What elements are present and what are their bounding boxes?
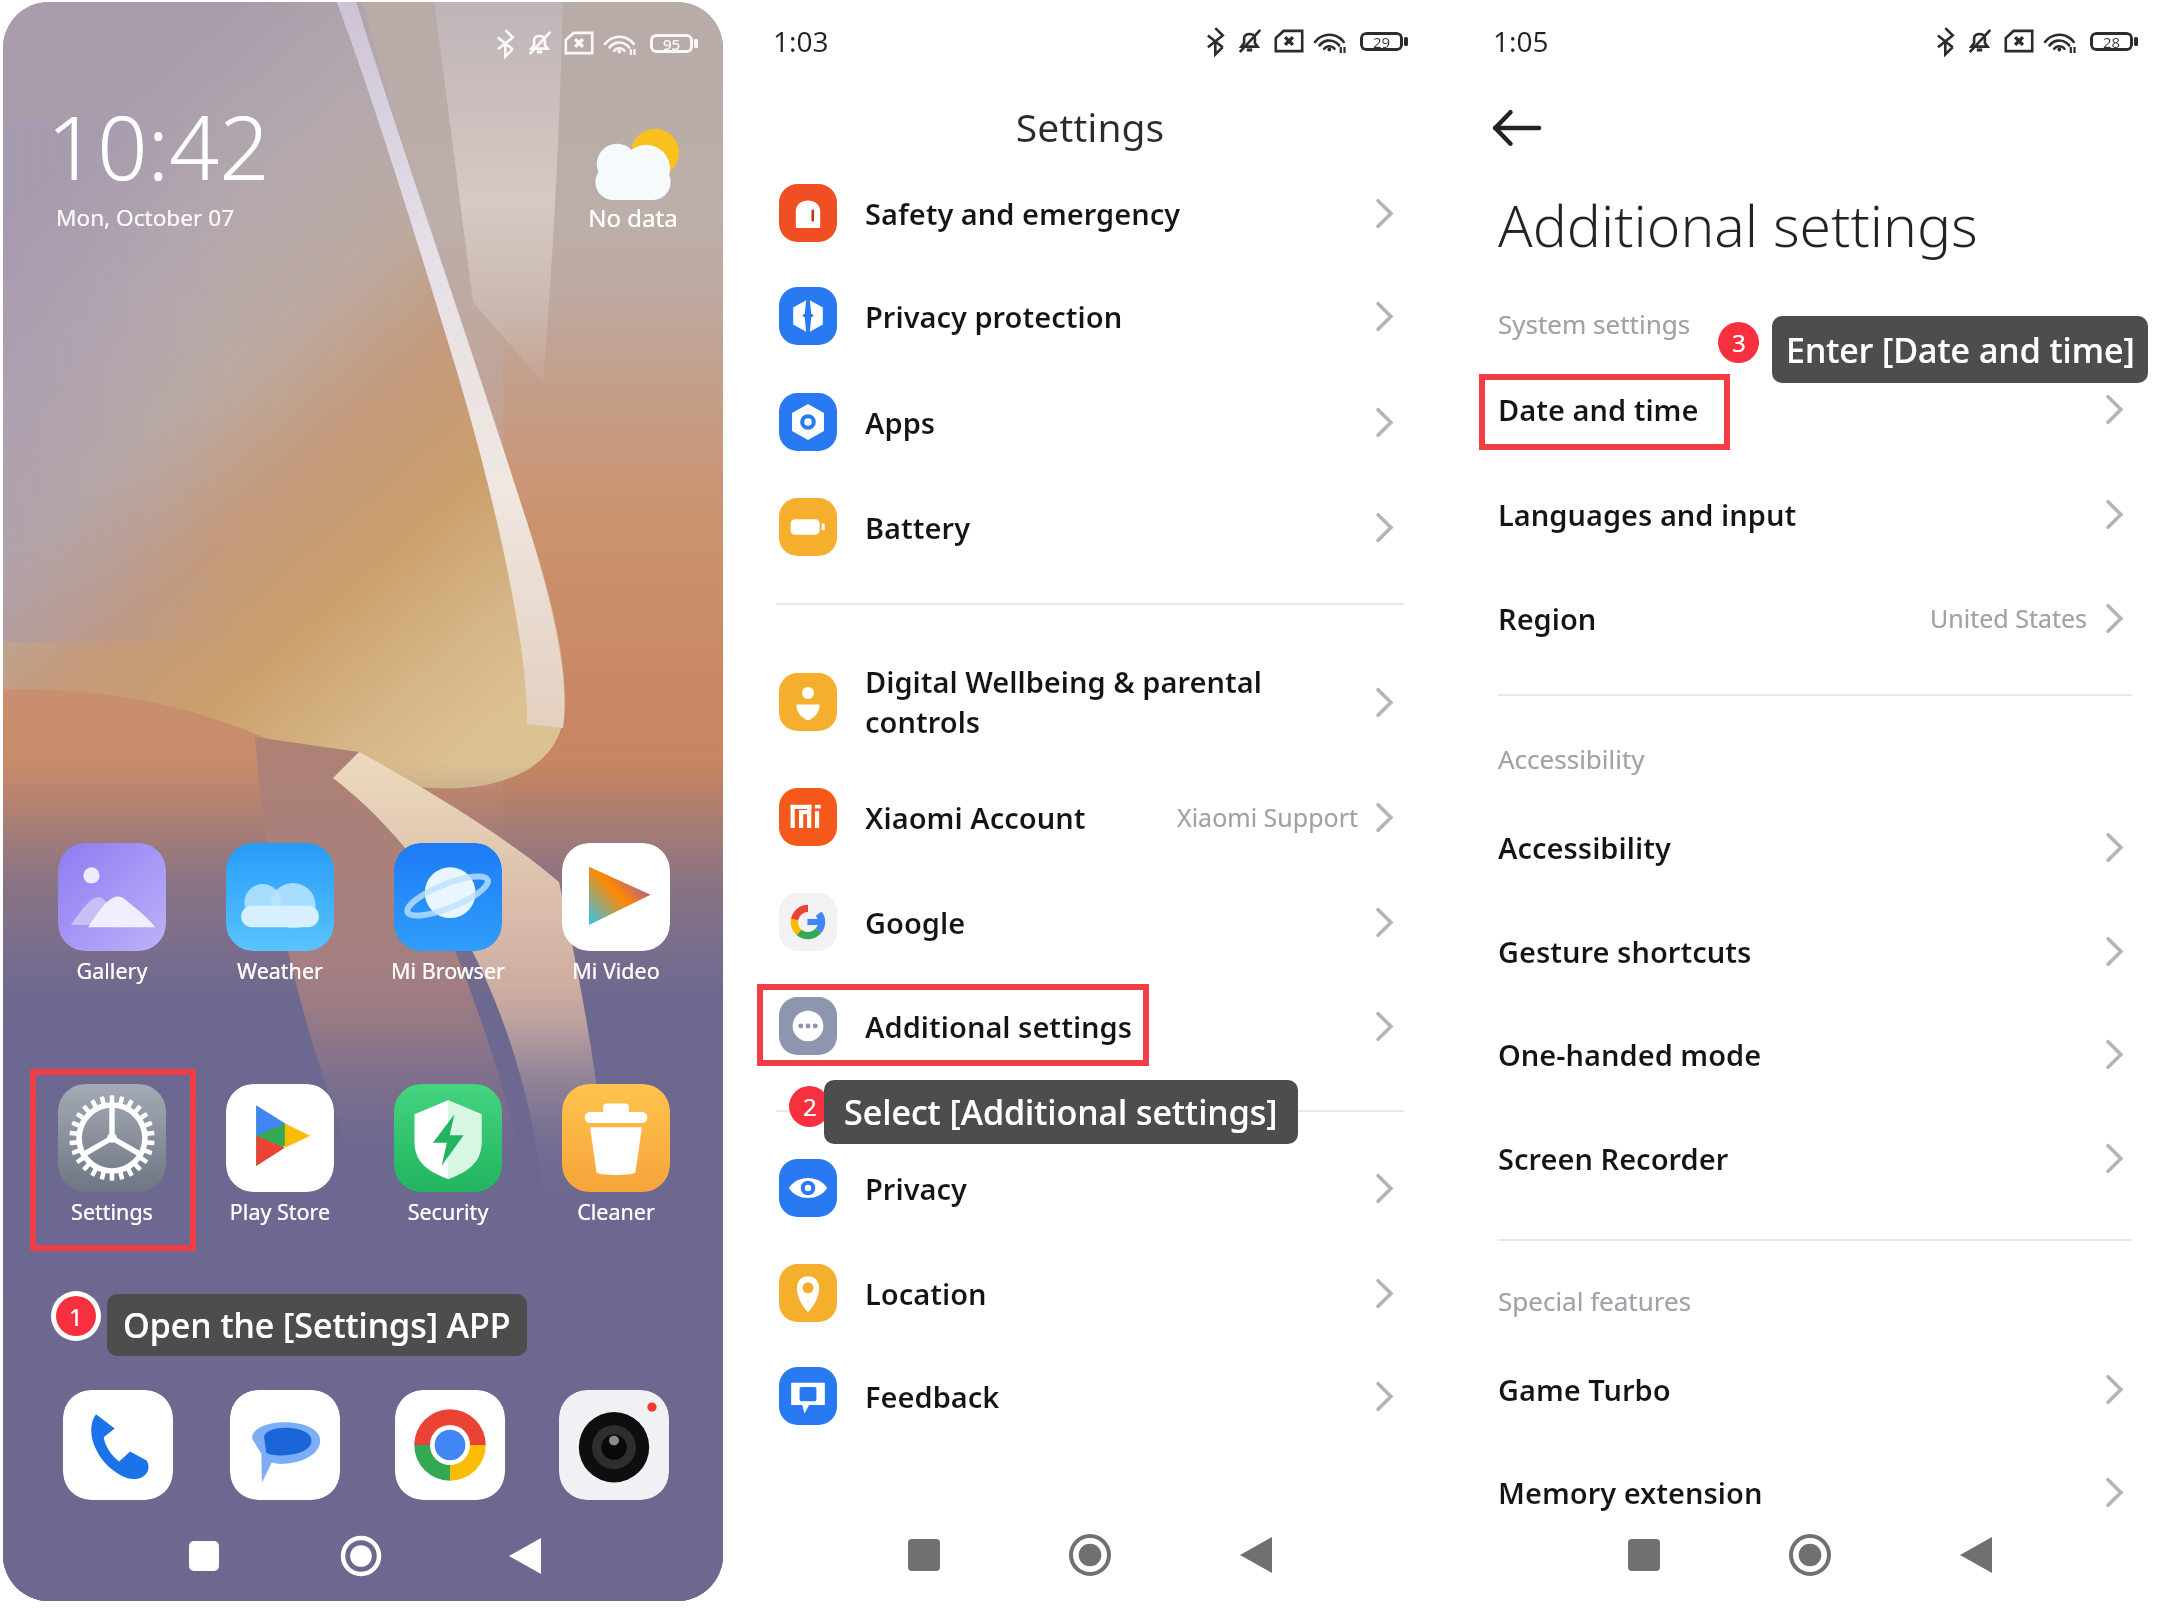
staticText: Gallery bbox=[22, 956, 202, 985]
staticText: Location bbox=[865, 1274, 1376, 1313]
button[interactable]: Cleaner bbox=[526, 1084, 706, 1258]
staticText: United States bbox=[1930, 601, 2088, 635]
button[interactable]: Accessibility bbox=[1470, 795, 2160, 899]
staticText: 10:42 bbox=[47, 86, 270, 206]
button[interactable]: Digital Wellbeing & parental controls bbox=[750, 649, 1430, 755]
staticText: Feedback bbox=[865, 1377, 1376, 1416]
staticText: Mi Browser bbox=[358, 956, 538, 985]
staticText: Play Store bbox=[190, 1197, 370, 1226]
button[interactable]: Back bbox=[1228, 1527, 1284, 1583]
staticText: 1:03 bbox=[773, 22, 829, 60]
button[interactable]: Game Turbo bbox=[1470, 1337, 2160, 1441]
staticText: Privacy protection bbox=[865, 297, 1376, 336]
staticText: Open the [Settings] APP bbox=[123, 1302, 511, 1348]
staticText: 95 bbox=[663, 34, 681, 53]
staticText: Security bbox=[358, 1197, 538, 1226]
button[interactable]: Recents bbox=[176, 1528, 232, 1584]
staticText: Weather bbox=[190, 956, 370, 985]
button[interactable]: Home bbox=[333, 1528, 389, 1584]
button[interactable]: Home bbox=[1782, 1527, 1838, 1583]
staticText: Memory extension bbox=[1498, 1473, 2106, 1512]
button[interactable]: Phone bbox=[63, 1390, 173, 1500]
button[interactable]: Memory extension bbox=[1470, 1440, 2160, 1544]
staticText: Region bbox=[1498, 599, 1930, 638]
staticText: Gesture shortcuts bbox=[1498, 932, 2106, 971]
button[interactable]: One-handed mode bbox=[1470, 1002, 2160, 1106]
staticText: Mon, October 07 bbox=[56, 202, 235, 233]
button[interactable]: Settings bbox=[22, 1084, 202, 1258]
button[interactable]: Date and time bbox=[1470, 357, 2160, 461]
staticText: Mi Video bbox=[526, 956, 706, 985]
staticText: Accessibility bbox=[1498, 828, 2106, 867]
button[interactable]: Feedback bbox=[750, 1343, 1430, 1449]
staticText: Battery bbox=[865, 508, 1376, 547]
button[interactable]: Privacy protection bbox=[750, 263, 1430, 369]
button[interactable]: Mi Video bbox=[526, 843, 706, 1017]
button[interactable]: Security bbox=[358, 1084, 538, 1258]
staticText: Game Turbo bbox=[1498, 1370, 2106, 1409]
button[interactable]: Recents bbox=[896, 1527, 952, 1583]
staticText: Enter [Date and time] bbox=[1786, 327, 2135, 373]
staticText: Additional settings bbox=[865, 1007, 1376, 1046]
button[interactable]: Chrome bbox=[395, 1390, 505, 1500]
staticText: Screen Recorder bbox=[1498, 1139, 2106, 1178]
button[interactable]: Gesture shortcuts bbox=[1470, 899, 2160, 1003]
staticText: Settings bbox=[750, 100, 1430, 153]
button[interactable]: Safety and emergency bbox=[750, 160, 1430, 266]
staticText: Languages and input bbox=[1498, 495, 2106, 534]
button[interactable]: Region bbox=[1470, 566, 2160, 670]
staticText: Privacy bbox=[865, 1169, 1376, 1208]
staticText: Cleaner bbox=[526, 1197, 706, 1226]
button[interactable]: Languages and input bbox=[1470, 462, 2160, 566]
staticText: Settings bbox=[22, 1197, 202, 1226]
staticText: Apps bbox=[865, 403, 1376, 442]
button[interactable]: Mi Browser bbox=[358, 843, 538, 1017]
staticText: Digital Wellbeing & parental controls bbox=[865, 662, 1376, 742]
button[interactable]: Screen Recorder bbox=[1470, 1106, 2160, 1210]
button[interactable]: Location bbox=[750, 1240, 1430, 1346]
button[interactable]: Battery bbox=[750, 474, 1430, 580]
staticText: Additional settings bbox=[1498, 186, 1978, 264]
button[interactable]: Camera bbox=[559, 1390, 669, 1500]
staticText: 1:05 bbox=[1493, 22, 1549, 60]
button[interactable]: Privacy bbox=[750, 1135, 1430, 1241]
staticText: Xiaomi Account bbox=[865, 798, 1177, 837]
staticText: Safety and emergency bbox=[865, 194, 1376, 233]
button[interactable]: Back bbox=[497, 1528, 553, 1584]
button[interactable]: Weather bbox=[543, 102, 723, 247]
button[interactable]: Play Store bbox=[190, 1084, 370, 1258]
button[interactable]: Additional settings bbox=[750, 973, 1430, 1079]
staticText: System settings bbox=[1498, 306, 1691, 341]
staticText: 3 bbox=[1732, 326, 1746, 359]
button[interactable]: Google bbox=[750, 869, 1430, 975]
staticText: 1 bbox=[69, 1300, 83, 1333]
button[interactable]: Messages bbox=[230, 1390, 340, 1500]
button[interactable]: Xiaomi Account bbox=[750, 764, 1430, 870]
button[interactable]: Apps bbox=[750, 369, 1430, 475]
staticText: Accessibility bbox=[1498, 741, 1645, 776]
button[interactable]: Back bbox=[1948, 1527, 2004, 1583]
staticText: Date and time bbox=[1498, 390, 2106, 429]
staticText: One-handed mode bbox=[1498, 1035, 2106, 1074]
staticText: Special features bbox=[1498, 1283, 1692, 1318]
staticText: Google bbox=[865, 903, 1376, 942]
staticText: Select [Additional settings] bbox=[844, 1089, 1278, 1135]
staticText: 29 bbox=[1373, 32, 1391, 51]
staticText: 2 bbox=[803, 1090, 817, 1123]
button[interactable]: Weather bbox=[190, 843, 370, 1017]
staticText: 28 bbox=[2103, 32, 2121, 51]
button[interactable]: Recents bbox=[1616, 1527, 1672, 1583]
staticText: No data bbox=[543, 201, 723, 234]
button[interactable]: Home bbox=[1062, 1527, 1118, 1583]
button[interactable]: Gallery bbox=[22, 843, 202, 1017]
button[interactable]: Back bbox=[1480, 92, 1552, 164]
staticText: Xiaomi Support bbox=[1177, 800, 1358, 834]
